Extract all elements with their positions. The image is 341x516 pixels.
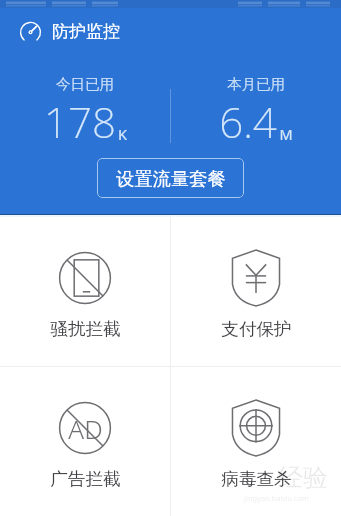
button[interactable]: 支付保护 (171, 217, 341, 366)
button[interactable]: 病毒查杀 (171, 367, 341, 516)
staticText: 病毒查杀 (221, 468, 292, 490)
staticText: 防护监控 (52, 21, 120, 42)
button[interactable]: 骚扰拦截 (0, 217, 170, 366)
staticText: M (279, 124, 293, 144)
staticText: AD (68, 411, 103, 446)
staticText: 本月已用 (227, 75, 285, 93)
staticText: 今日已用 (56, 75, 114, 93)
button[interactable]: AD (0, 367, 170, 516)
staticText: 设置流量套餐 (116, 167, 226, 190)
staticText: 6.4 (219, 93, 277, 147)
staticText: jingyan.baidu.com (244, 493, 309, 503)
staticText: 支付保护 (221, 318, 292, 340)
staticText: 经验 (278, 462, 328, 493)
staticText: 骚扰拦截 (50, 318, 121, 340)
staticText: 178 (44, 93, 116, 147)
staticText: K (118, 124, 127, 144)
staticText: 广告拦截 (50, 468, 121, 490)
button[interactable]: 设置流量套餐 (97, 158, 244, 198)
